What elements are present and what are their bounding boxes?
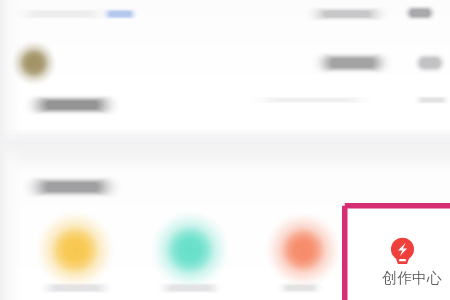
button[interactable]: 创作中心 (342, 203, 450, 300)
staticText: 创作中心 (382, 269, 442, 288)
